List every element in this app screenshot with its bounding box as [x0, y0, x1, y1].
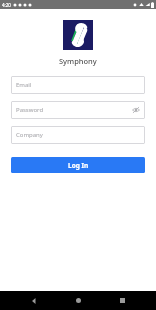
button[interactable]: Password — [11, 101, 145, 119]
button[interactable]: Log In — [11, 157, 145, 173]
staticText: Password — [16, 106, 44, 114]
button[interactable]: Company — [11, 126, 145, 144]
staticText: Symphony — [59, 56, 97, 66]
staticText: Company — [16, 131, 43, 139]
button[interactable]: Email — [11, 76, 145, 94]
staticText: Log In — [68, 161, 89, 170]
staticText: 4:20 — [2, 2, 11, 8]
button[interactable]: Home — [68, 291, 88, 310]
button[interactable]: Show password — [132, 106, 140, 114]
button[interactable]: Recent apps — [112, 291, 132, 310]
staticText: Email — [16, 81, 32, 89]
button[interactable]: Back — [24, 291, 44, 310]
